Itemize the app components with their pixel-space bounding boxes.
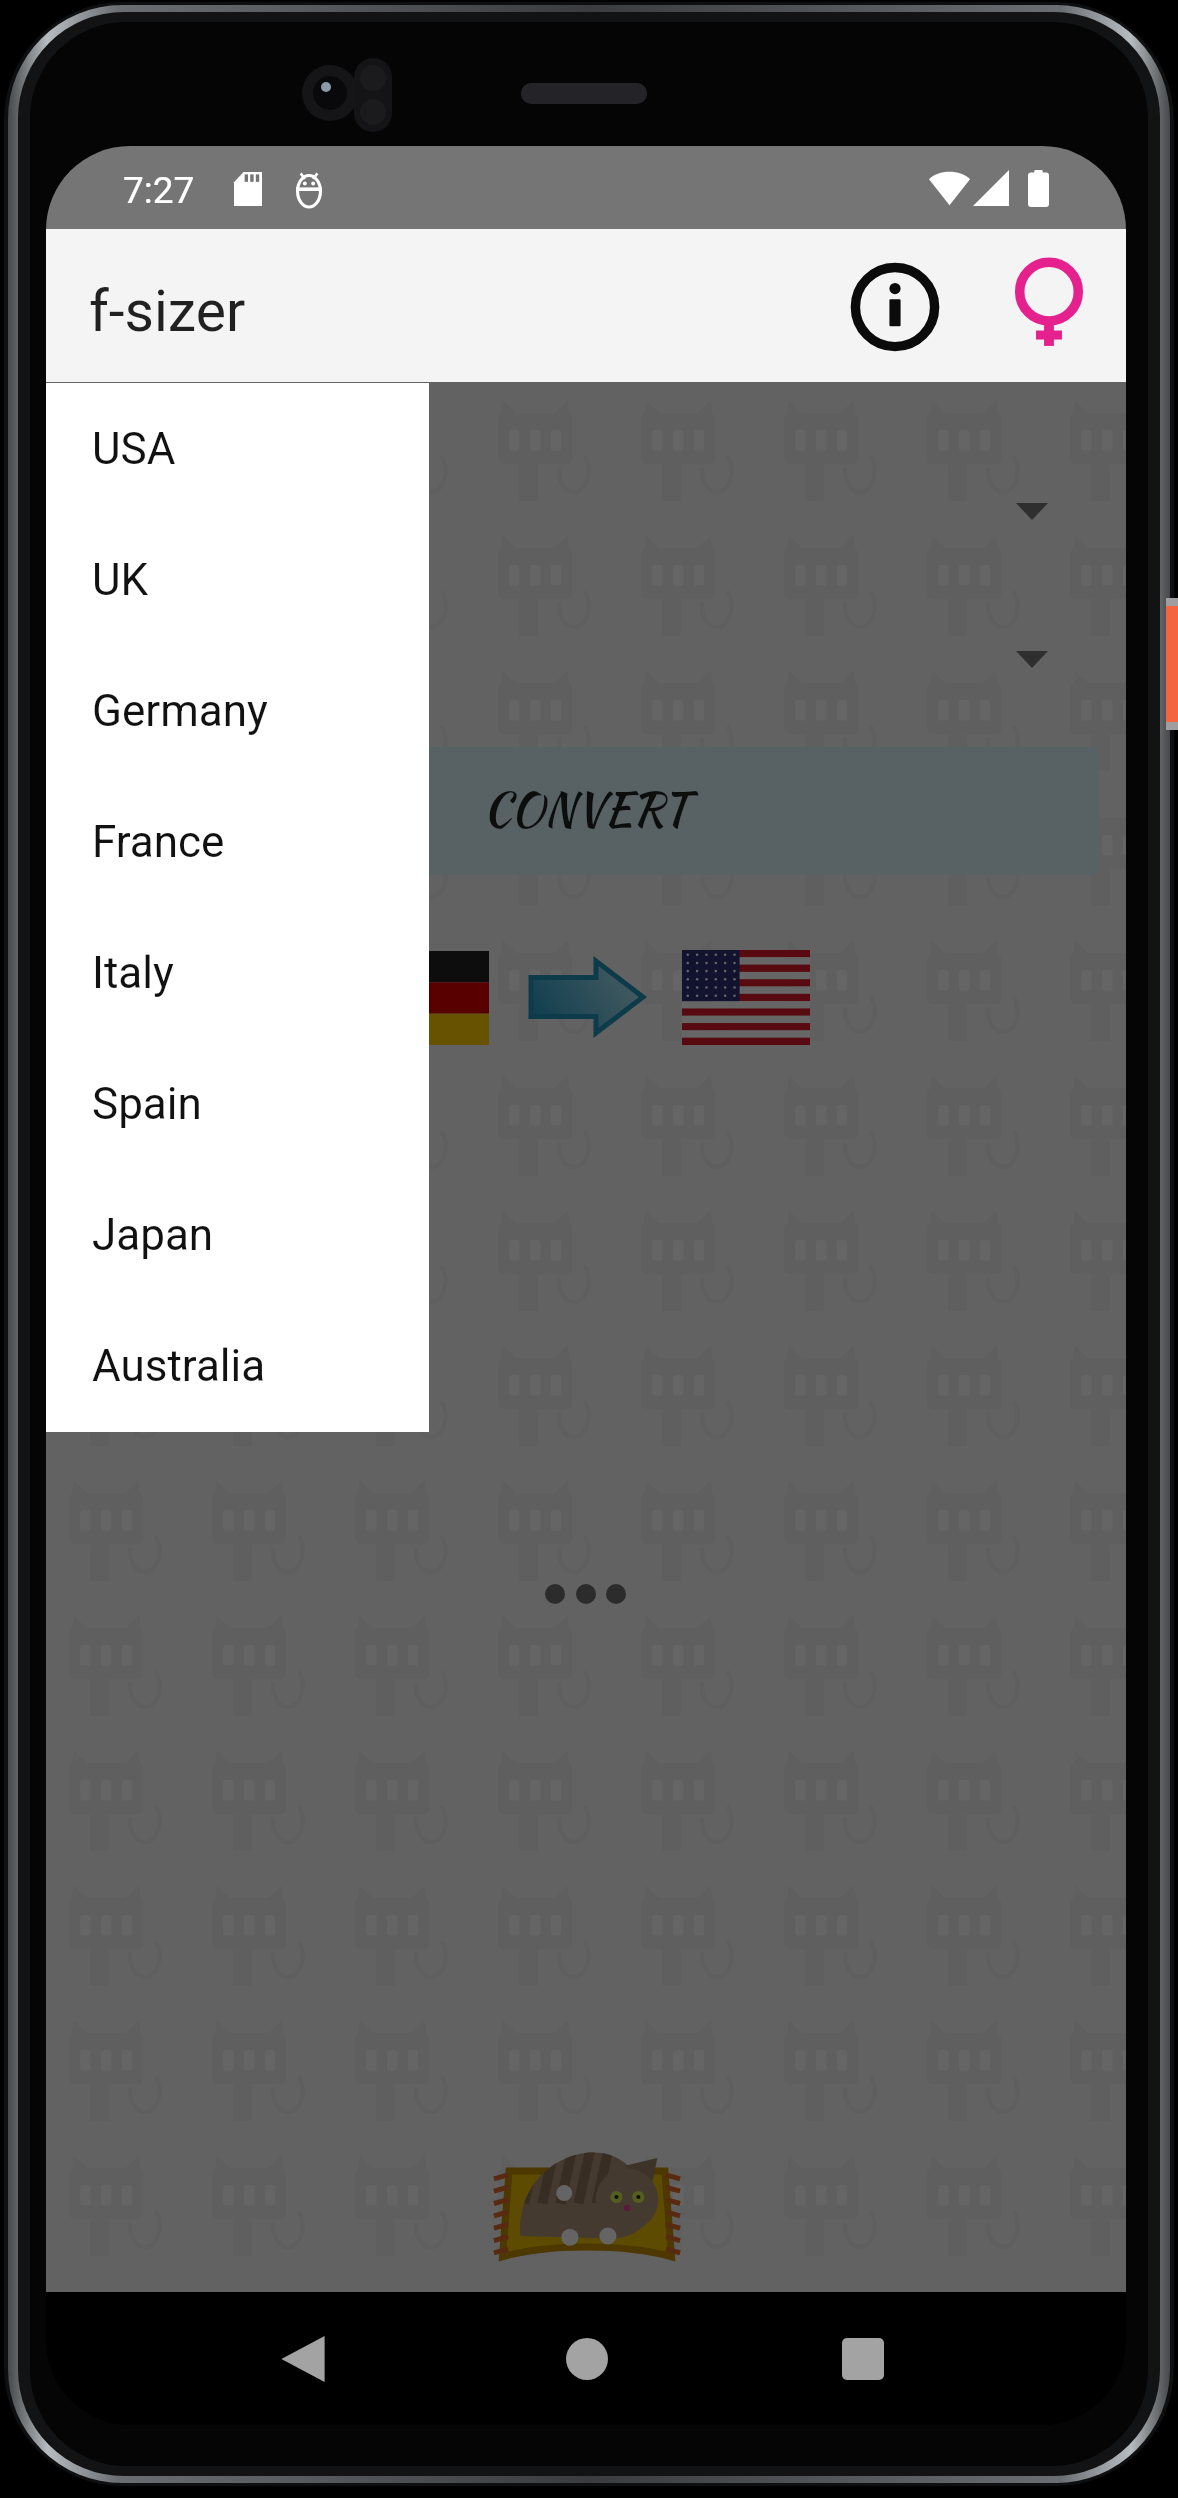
staticText: Japan: [92, 1209, 214, 1261]
staticText: France: [92, 816, 225, 868]
staticText: Germany: [92, 685, 268, 737]
staticText: Italy: [92, 947, 174, 999]
staticText: Spain: [92, 1078, 202, 1130]
staticText: CONVERT: [483, 775, 689, 842]
staticText: USA: [92, 423, 176, 475]
button[interactable]: Gender: [989, 247, 1109, 367]
button[interactable]: Select target country: [73, 598, 1099, 720]
button[interactable]: Spain: [46, 1038, 429, 1169]
button[interactable]: Home: [517, 2292, 657, 2425]
button[interactable]: Japan: [46, 1169, 429, 1300]
staticText: Australia: [92, 1340, 266, 1392]
staticText: f-sizer: [89, 278, 246, 345]
staticText: UK: [92, 554, 149, 606]
button[interactable]: USA: [46, 383, 429, 514]
button[interactable]: CONVERT: [73, 747, 1099, 875]
button[interactable]: France: [46, 776, 429, 907]
button[interactable]: Back: [233, 2292, 373, 2425]
button[interactable]: UK: [46, 514, 429, 645]
button[interactable]: Select source country: [73, 450, 1099, 572]
button[interactable]: Info: [835, 247, 955, 367]
button[interactable]: Australia: [46, 1300, 429, 1431]
button[interactable]: Germany: [46, 645, 429, 776]
staticText: 7:27: [123, 169, 195, 212]
button[interactable]: Recent apps: [793, 2292, 933, 2425]
button[interactable]: Italy: [46, 907, 429, 1038]
